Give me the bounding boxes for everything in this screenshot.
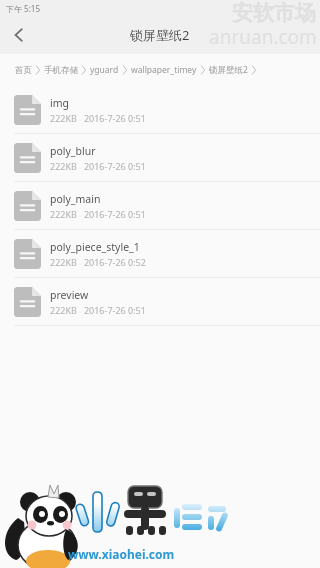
staticText: 手机存储: [44, 65, 78, 76]
button[interactable]: img: [0, 86, 320, 134]
staticText: www.xiaohei.com: [68, 546, 175, 562]
staticText: 首页: [15, 65, 32, 76]
staticText: poly_main: [50, 192, 101, 206]
button[interactable]: preview: [0, 278, 320, 326]
button[interactable]: 首页: [15, 65, 32, 76]
staticText: 222KB 2016-7-26 0:51: [50, 304, 146, 316]
staticText: wallpaper_timey: [131, 64, 197, 76]
staticText: 222KB 2016-7-26 0:52: [50, 256, 146, 268]
button[interactable]: poly_piece_style_1: [0, 230, 320, 278]
button[interactable]: 手机存储: [44, 65, 78, 76]
staticText: poly_blur: [50, 144, 96, 158]
staticText: 锁屏壁纸2: [130, 26, 190, 44]
staticText: 222KB 2016-7-26 0:51: [50, 208, 146, 220]
button[interactable]: poly_blur: [0, 134, 320, 182]
staticText: anruan.com: [209, 24, 317, 50]
button[interactable]: yguard: [90, 64, 119, 76]
staticText: 安软市场: [232, 0, 316, 26]
button[interactable]: Back: [0, 16, 38, 54]
staticText: yguard: [90, 64, 119, 76]
button[interactable]: wallpaper_timey: [131, 64, 197, 76]
staticText: poly_piece_style_1: [50, 240, 140, 254]
staticText: preview: [50, 288, 89, 302]
staticText: img: [50, 96, 69, 110]
button[interactable]: poly_main: [0, 182, 320, 230]
staticText: 下午 5:15: [6, 3, 40, 14]
staticText: 222KB 2016-7-26 0:51: [50, 112, 146, 124]
staticText: 锁屏壁纸2: [209, 64, 248, 76]
button[interactable]: 锁屏壁纸2: [209, 64, 248, 76]
staticText: 222KB 2016-7-26 0:51: [50, 160, 146, 172]
